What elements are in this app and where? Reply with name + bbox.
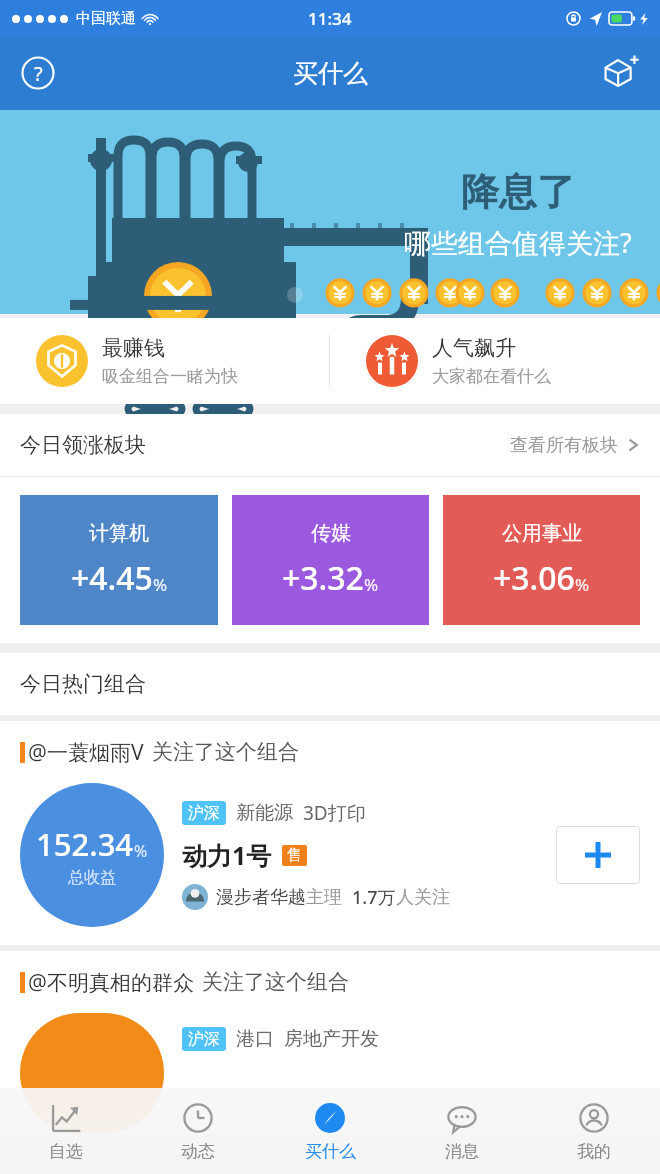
staticText: 中国联通 — [76, 9, 136, 28]
staticText: ? — [34, 60, 43, 87]
staticText: 查看所有板块 — [510, 434, 618, 457]
staticText: 关注了这个组合 — [152, 739, 299, 765]
staticText: @不明真相的群众 — [28, 968, 194, 997]
staticText: 11:34 — [308, 7, 352, 30]
button[interactable]: Add portfolio — [556, 826, 640, 884]
staticText: 哪些组合值得关注? — [404, 224, 632, 261]
staticText: 自选 — [49, 1141, 83, 1162]
button[interactable]: 买什么 — [264, 1088, 396, 1174]
button[interactable]: 今日领涨板块 — [0, 414, 660, 476]
staticText: 动力1号 — [182, 838, 272, 872]
button[interactable]: 动态 — [132, 1088, 264, 1174]
staticText: +3.06 — [493, 556, 575, 600]
button[interactable]: Create portfolio — [594, 47, 646, 99]
button[interactable]: 公用事业 — [443, 495, 640, 625]
staticText: 港口 — [236, 1027, 274, 1051]
button[interactable]: 我的 — [528, 1088, 660, 1174]
staticText: 人气飙升 — [432, 335, 516, 361]
button[interactable]: @不明真相的群众 — [0, 951, 660, 1133]
staticText: +4.45 — [71, 556, 153, 600]
staticText: 房地产开发 — [284, 1027, 379, 1051]
button[interactable]: 人气飙升 — [330, 318, 660, 404]
staticText: 我的 — [577, 1141, 611, 1162]
staticText: 最赚钱 — [102, 335, 165, 361]
button[interactable]: 自选 — [0, 1088, 132, 1174]
staticText: 售 — [287, 846, 302, 865]
staticText: 关注了这个组合 — [202, 969, 349, 995]
staticText: 152.34 — [36, 823, 134, 865]
staticText: % — [153, 573, 168, 596]
staticText: 3D打印 — [303, 800, 366, 826]
staticText: 计算机 — [89, 521, 149, 546]
staticText: 主理 — [306, 886, 342, 909]
staticText: 1.7万 — [352, 885, 396, 910]
staticText: 买什么 — [305, 1141, 356, 1162]
button[interactable]: Help — [14, 49, 62, 97]
button[interactable]: 计算机 — [20, 495, 218, 625]
staticText: 传媒 — [311, 521, 351, 546]
staticText: % — [575, 573, 590, 596]
staticText: % — [134, 840, 148, 862]
staticText: 降息了 — [461, 168, 575, 216]
staticText: % — [364, 573, 379, 596]
staticText: 买什么 — [293, 58, 368, 89]
staticText: 消息 — [445, 1141, 479, 1162]
staticText: @一蓑烟雨V — [28, 738, 144, 767]
button[interactable]: 最赚钱 — [0, 318, 329, 404]
staticText: 沪深 — [188, 1029, 220, 1049]
staticText: 今日热门组合 — [20, 671, 146, 697]
button[interactable]: @一蓑烟雨V — [0, 721, 660, 945]
staticText: 新能源 — [236, 801, 293, 825]
staticText: 大家都在看什么 — [432, 366, 551, 387]
button[interactable]: 消息 — [396, 1088, 528, 1174]
staticText: 今日领涨板块 — [20, 432, 146, 458]
button[interactable]: 传媒 — [232, 495, 429, 625]
button[interactable]: 降息了 — [0, 110, 660, 314]
staticText: 动态 — [181, 1141, 215, 1162]
staticText: 沪深 — [188, 803, 220, 823]
staticText: 公用事业 — [502, 521, 582, 546]
staticText: 漫步者华越 — [216, 886, 306, 909]
staticText: 吸金组合一睹为快 — [102, 366, 238, 387]
staticText: 人关注 — [396, 886, 450, 909]
staticText: +3.32 — [282, 556, 364, 600]
staticText: 总收益 — [68, 868, 116, 888]
